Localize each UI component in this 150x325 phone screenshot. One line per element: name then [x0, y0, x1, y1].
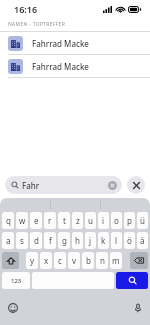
staticText: r: [48, 215, 52, 226]
staticText: p: [127, 215, 132, 226]
button[interactable]: Clear text: [108, 181, 117, 190]
staticText: i: [102, 215, 105, 226]
staticText: u: [88, 215, 93, 226]
button[interactable]: c: [54, 252, 66, 269]
staticText: m: [112, 255, 120, 266]
staticText: y: [30, 255, 35, 266]
button[interactable]: a: [2, 232, 14, 249]
button[interactable]: Shift: [2, 252, 19, 269]
button[interactable]: v: [68, 252, 80, 269]
staticText: 16:16: [14, 3, 38, 15]
staticText: x: [44, 255, 49, 266]
staticText: n: [100, 255, 105, 266]
staticText: q: [6, 215, 11, 226]
button[interactable]: e: [30, 212, 42, 229]
button[interactable]: j: [85, 232, 96, 249]
staticText: w: [19, 215, 26, 226]
staticText: a: [6, 235, 11, 246]
button[interactable]: ü: [137, 212, 148, 229]
button[interactable]: g: [58, 232, 70, 249]
staticText: d: [34, 235, 39, 246]
button[interactable]: f: [44, 232, 56, 249]
button[interactable]: p: [124, 212, 135, 229]
button[interactable]: Backspace: [130, 252, 148, 269]
staticText: Fahrrad Macke: [32, 61, 89, 72]
button[interactable]: 123: [2, 272, 30, 289]
button[interactable]: t: [58, 212, 70, 229]
staticText: j: [89, 235, 92, 246]
button[interactable]: [0, 198, 50, 212]
staticText: v: [72, 255, 77, 266]
button[interactable]: Emoji: [6, 301, 19, 314]
button[interactable]: k: [98, 232, 109, 249]
button[interactable]: y: [26, 252, 38, 269]
button[interactable]: q: [2, 212, 14, 229]
staticText: ü: [140, 215, 145, 226]
staticText: f: [49, 235, 52, 246]
button[interactable]: z: [72, 212, 83, 229]
button[interactable]: l: [111, 232, 122, 249]
staticText: s: [20, 235, 24, 246]
button[interactable]: s: [16, 232, 28, 249]
button[interactable]: ä: [137, 232, 148, 249]
button[interactable]: Fahrrad Macke: [0, 32, 150, 55]
button[interactable]: i: [98, 212, 109, 229]
staticText: k: [101, 235, 106, 246]
button[interactable]: n: [96, 252, 108, 269]
staticText: NAMEN - TOPTREFFER: [8, 21, 66, 28]
button[interactable]: Fahrrad Macke: [0, 55, 150, 78]
button[interactable]: w: [16, 212, 28, 229]
button[interactable]: m: [110, 252, 122, 269]
button[interactable]: u: [85, 212, 96, 229]
button[interactable]: r: [44, 212, 56, 229]
button[interactable]: Fahr: [5, 176, 122, 194]
button[interactable]: Cancel search: [127, 176, 145, 194]
staticText: l: [115, 235, 118, 246]
staticText: t: [63, 215, 66, 226]
staticText: Fahr: [22, 180, 108, 191]
button[interactable]: ö: [124, 232, 135, 249]
button[interactable]: b: [82, 252, 94, 269]
staticText: z: [76, 215, 80, 226]
button[interactable]: d: [30, 232, 42, 249]
staticText: h: [75, 235, 80, 246]
button[interactable]: x: [40, 252, 52, 269]
staticText: c: [58, 255, 62, 266]
staticText: 123: [11, 277, 22, 285]
button[interactable]: Voice input: [131, 301, 144, 314]
staticText: b: [86, 255, 91, 266]
staticText: ö: [127, 235, 132, 246]
button[interactable]: h: [72, 232, 83, 249]
staticText: e: [34, 215, 39, 226]
button[interactable]: o: [111, 212, 122, 229]
staticText: o: [114, 215, 119, 226]
staticText: g: [62, 235, 67, 246]
staticText: ä: [140, 235, 145, 246]
button[interactable]: Search: [116, 272, 148, 289]
button[interactable]: [101, 198, 150, 212]
staticText: Fahrrad Macke: [32, 38, 89, 49]
